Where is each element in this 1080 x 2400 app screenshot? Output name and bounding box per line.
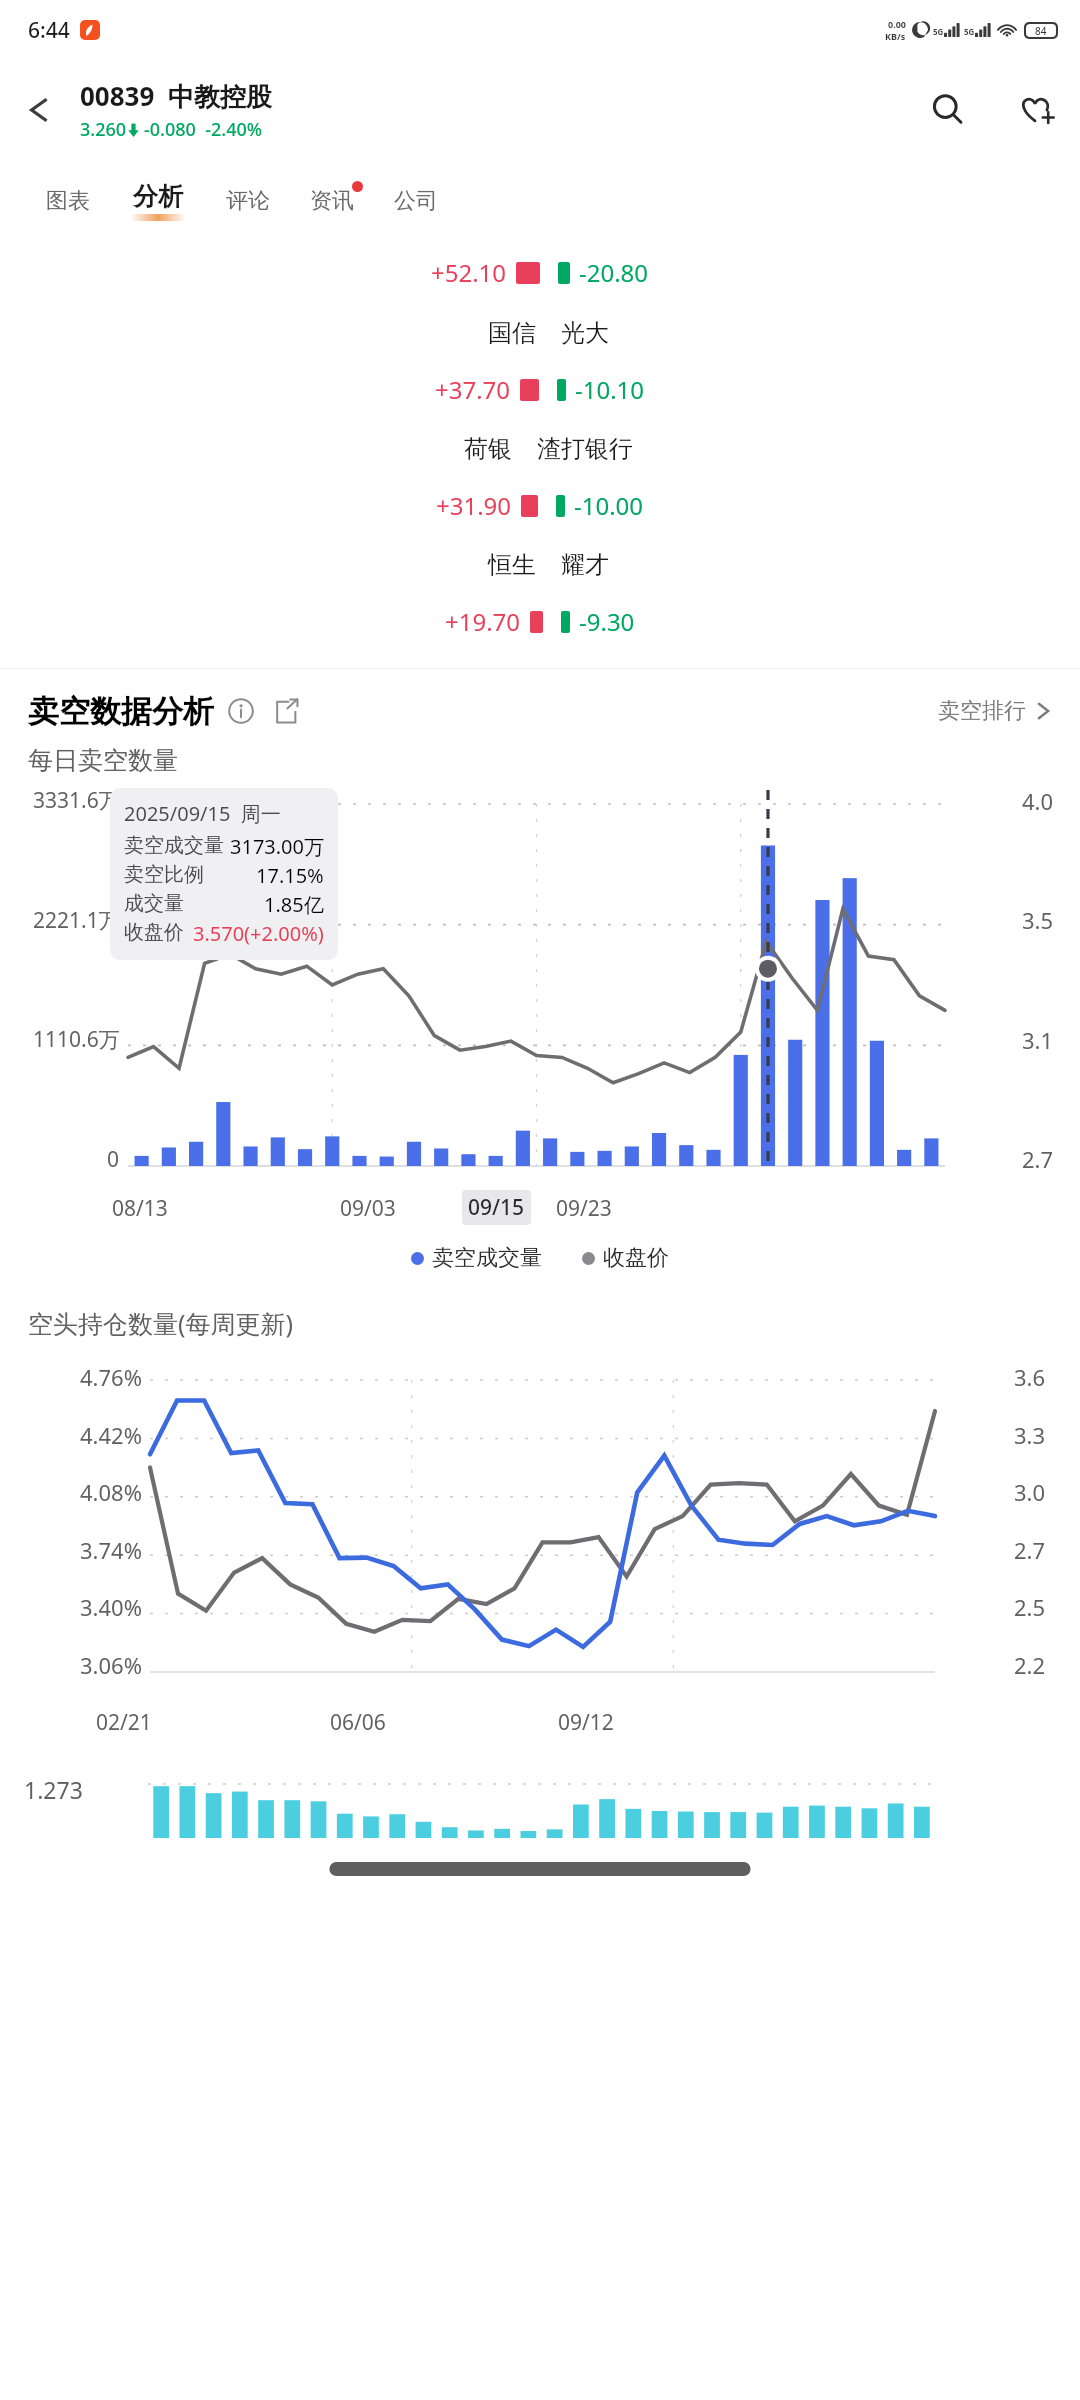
staticText: 卖空排行 (938, 697, 1026, 725)
staticText: 09/23 (556, 1194, 612, 1223)
staticText: 3.1 (1022, 1025, 1054, 1055)
staticText: 3.260 (80, 117, 127, 142)
staticText: +52.10 (431, 256, 507, 289)
staticText: 2.7 (1022, 1144, 1054, 1174)
button[interactable]: 评论 (226, 187, 270, 215)
staticText: 08/13 (112, 1194, 168, 1223)
staticText: 收盘价 (603, 1244, 669, 1272)
staticText: 2.5 (1014, 1592, 1046, 1622)
staticText: 3.06% (80, 1650, 142, 1680)
staticText: -9.30 (579, 605, 635, 638)
staticText: 成交量 (124, 891, 184, 916)
staticText: -20.80 (579, 256, 649, 289)
staticText: 卖空比例 (124, 862, 204, 887)
button[interactable]: Share (270, 695, 302, 727)
staticText: 2025/09/15 周一 (124, 800, 281, 827)
button[interactable]: 卖空排行 (938, 691, 1052, 731)
staticText: 3.74% (80, 1535, 142, 1565)
staticText: 1.273 (24, 1774, 83, 1805)
staticText: 3.570(+2.00%) (193, 920, 324, 947)
staticText: 0.00 (888, 18, 906, 30)
button[interactable]: Add to watchlist (992, 66, 1080, 154)
staticText: 恒生 耀才 (488, 547, 609, 580)
staticText: 0 (107, 1145, 120, 1174)
staticText: 卖空成交量 (432, 1244, 542, 1272)
staticText: 06/06 (330, 1708, 386, 1737)
staticText: 评论 (226, 187, 270, 215)
staticText: 收盘价 (124, 920, 184, 945)
staticText: 公司 (394, 187, 438, 215)
staticText: 3.40% (80, 1592, 142, 1622)
button[interactable]: 分析 (130, 181, 186, 221)
staticText: 3.5 (1022, 905, 1054, 935)
staticText: 每日卖空数量 (28, 745, 178, 776)
staticText: KB/s (885, 30, 906, 42)
staticText: -10.10 (575, 373, 645, 406)
button[interactable]: Info (226, 696, 256, 726)
staticText: 09/03 (340, 1194, 396, 1223)
button[interactable]: Back (0, 70, 80, 150)
staticText: -0.080 -2.40% (144, 117, 263, 142)
staticText: 3.0 (1014, 1477, 1046, 1507)
staticText: 4.76% (80, 1362, 142, 1392)
staticText: 3.6 (1014, 1362, 1046, 1392)
button[interactable]: Search (904, 66, 992, 154)
staticText: 荷银 渣打银行 (464, 431, 633, 464)
staticText: 图表 (46, 187, 90, 215)
staticText: 分析 (133, 181, 183, 212)
staticText: 02/21 (96, 1708, 152, 1737)
staticText: -10.00 (574, 489, 644, 522)
staticText: 1110.6万 (33, 1025, 120, 1054)
staticText: 2221.1万 (33, 906, 120, 935)
staticText: 17.15% (256, 862, 324, 889)
staticText: 空头持仓数量(每周更新) (28, 1306, 294, 1340)
button[interactable]: 资讯 (310, 187, 354, 215)
staticText: 84 (1035, 24, 1047, 37)
staticText: 5G (933, 26, 944, 37)
staticText: 4.42% (80, 1420, 142, 1450)
staticText: 00839 中教控股 (80, 78, 272, 114)
staticText: 3.3 (1014, 1420, 1046, 1450)
staticText: +31.90 (436, 489, 512, 522)
button[interactable]: 公司 (394, 187, 438, 215)
staticText: +19.70 (445, 605, 521, 638)
staticText: 3331.6万 (33, 786, 120, 815)
staticText: 资讯 (310, 187, 354, 215)
staticText: 卖空成交量 (124, 833, 224, 858)
staticText: 卖空数据分析 (28, 692, 214, 731)
staticText: 4.0 (1022, 786, 1054, 816)
staticText: 2.7 (1014, 1535, 1046, 1565)
staticText: 6:44 (28, 16, 70, 45)
staticText: 3173.00万 (230, 833, 324, 860)
staticText: 国信 光大 (488, 315, 609, 348)
staticText: 1.85亿 (264, 891, 324, 918)
staticText: +37.70 (435, 373, 511, 406)
button[interactable]: 图表 (46, 187, 90, 215)
staticText: 2.2 (1014, 1650, 1046, 1680)
staticText: 4.08% (80, 1477, 142, 1507)
staticText: 5G (964, 26, 975, 37)
staticText: 09/12 (558, 1708, 614, 1737)
staticText: 09/15 (468, 1193, 525, 1222)
